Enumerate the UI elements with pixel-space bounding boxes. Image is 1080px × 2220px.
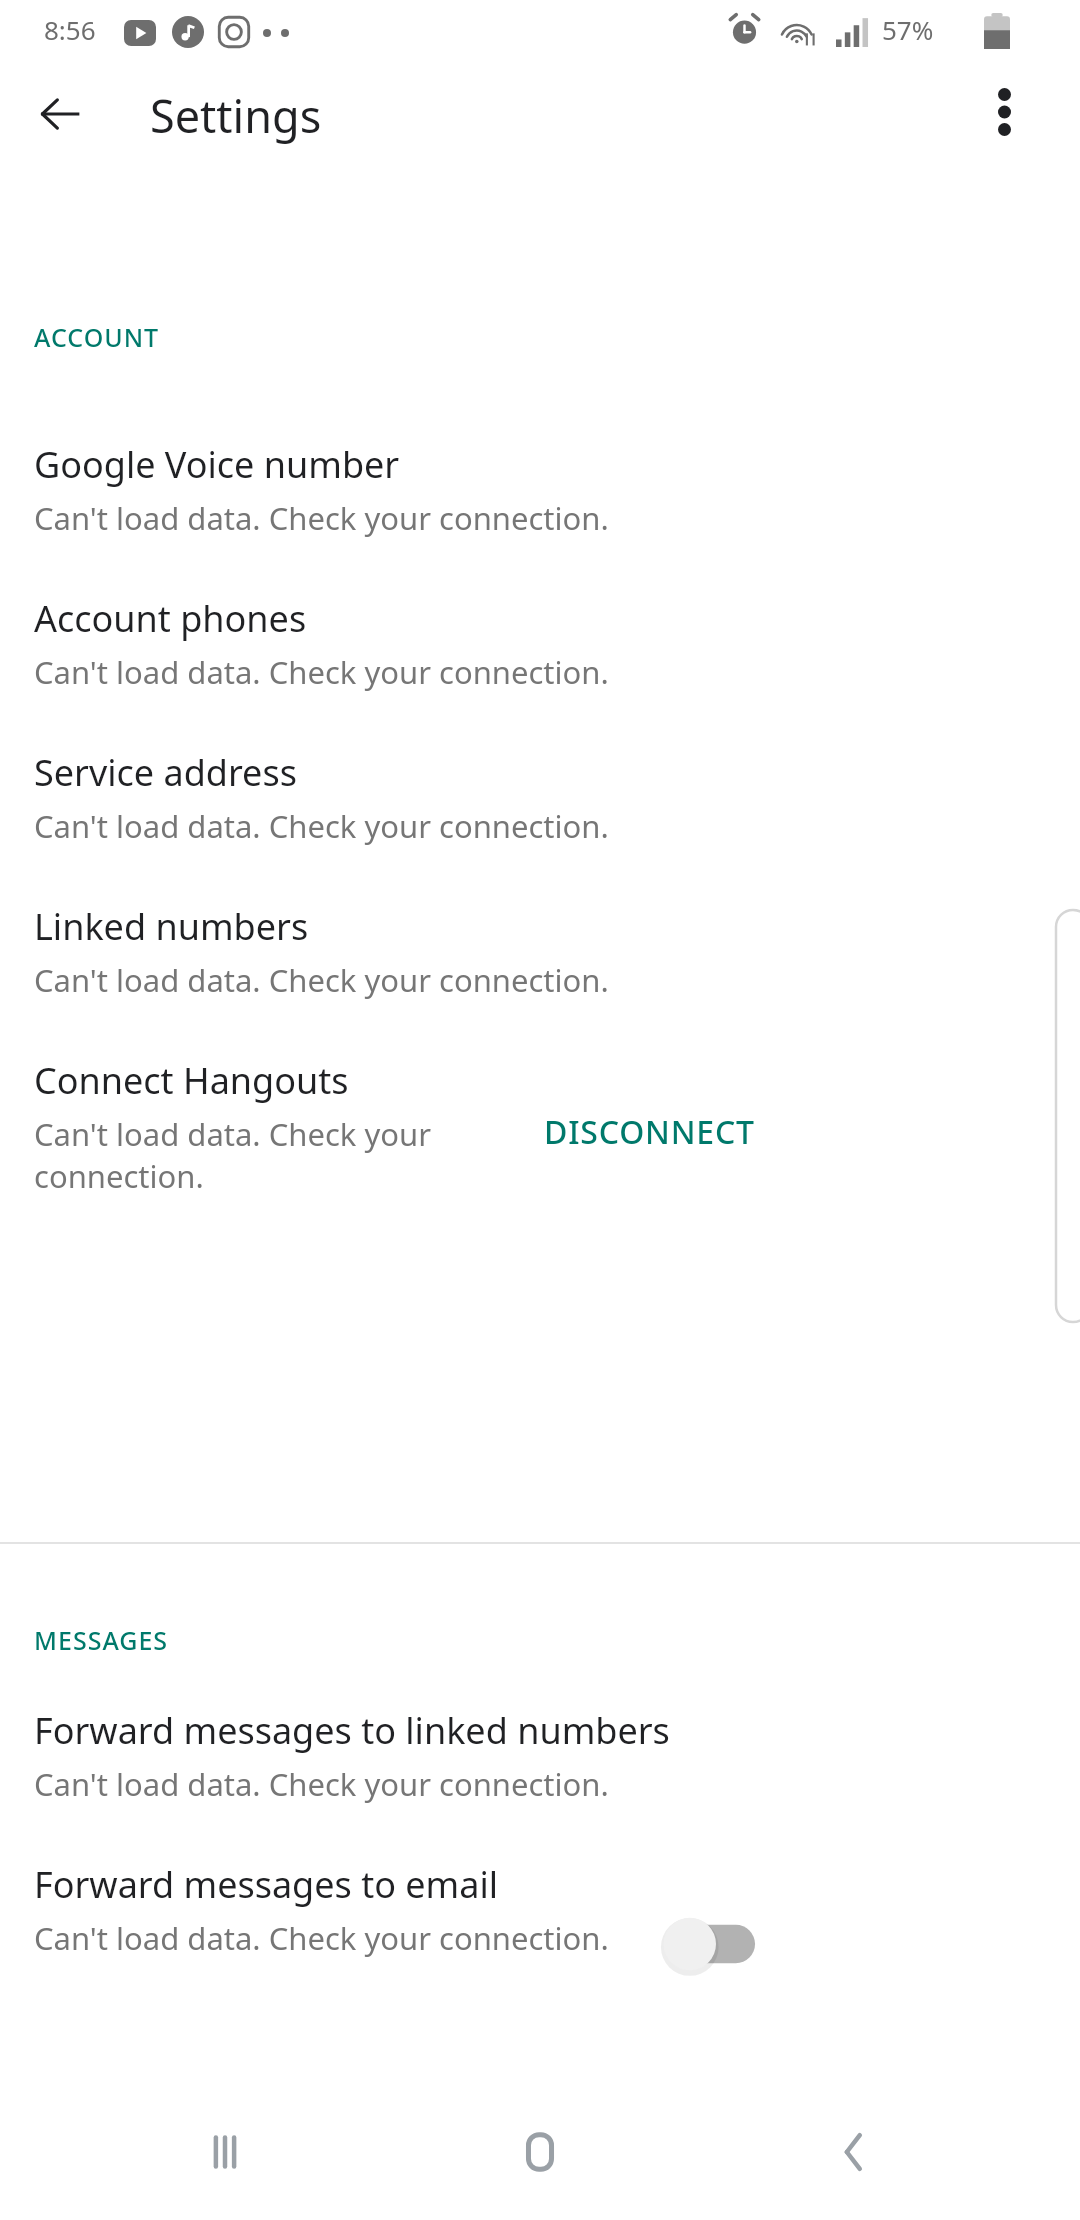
staticText: Can't load data. Check your connection. [34,1917,609,1959]
button[interactable]: Google Voice number [0,432,1080,547]
button[interactable]: Back [16,70,104,158]
staticText: Can't load data. Check your connection. [34,1113,534,1197]
staticText: Forward messages to email [34,1860,499,1909]
button[interactable]: Home [495,2107,585,2197]
staticText: Can't load data. Check your connection. [34,959,609,1001]
button[interactable]: Recent apps [180,2107,270,2197]
staticText: Can't load data. Check your connection. [34,651,609,693]
button[interactable]: Forward messages to linked numbers [0,1698,1080,1813]
button[interactable]: Forward messages to email [652,1912,764,1976]
button[interactable]: Forward messages to email [0,1852,1080,1967]
button[interactable]: Service address [0,740,1080,855]
staticText: Linked numbers [34,902,309,951]
button[interactable]: Connect Hangouts [0,1048,1080,1205]
staticText: ACCOUNT [34,320,160,354]
staticText: Google Voice number [34,440,400,489]
button[interactable]: Account phones [0,586,1080,701]
staticText: 57% [882,12,934,47]
staticText: Can't load data. Check your connection. [34,1763,609,1805]
staticText: Forward messages to linked numbers [34,1706,670,1755]
staticText: Settings [150,85,322,146]
button[interactable]: More options [962,70,1046,154]
staticText: DISCONNECT [544,1110,755,1154]
staticText: Service address [34,748,297,797]
button[interactable]: Linked numbers [0,894,1080,1009]
staticText: Can't load data. Check your connection. [34,497,609,539]
staticText: Can't load data. Check your connection. [34,805,609,847]
staticText: MESSAGES [34,1623,169,1657]
staticText: Connect Hangouts [34,1056,349,1105]
staticText: 8:56 [44,12,96,47]
staticText: Account phones [34,594,307,643]
button[interactable]: DISCONNECT [534,1102,765,1162]
button[interactable]: Back [810,2107,900,2197]
